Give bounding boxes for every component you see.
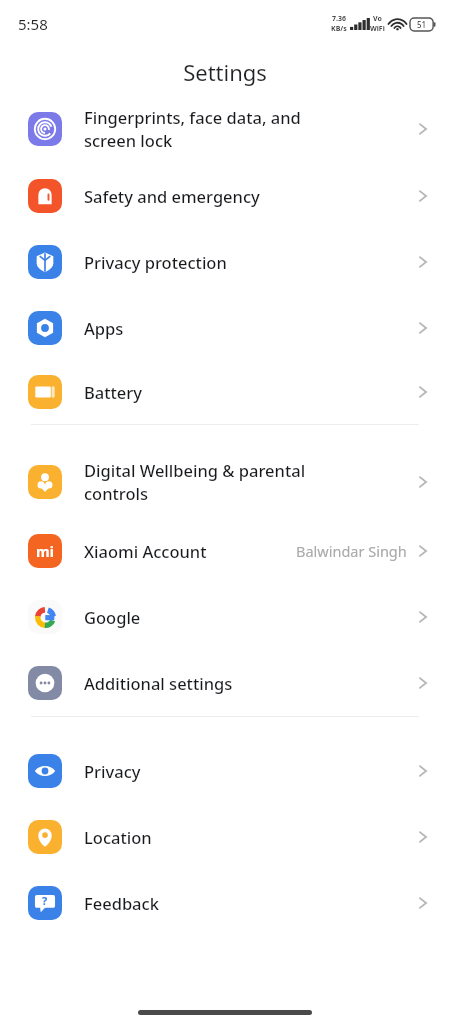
staticText: mi bbox=[36, 542, 54, 561]
button[interactable]: Additional settings bbox=[0, 650, 450, 716]
button[interactable]: Google bbox=[0, 584, 450, 650]
staticText: WiFi bbox=[370, 24, 385, 34]
staticText: Privacy protection bbox=[84, 251, 416, 273]
staticText: Settings bbox=[183, 57, 267, 87]
staticText: 5:58 bbox=[18, 14, 48, 34]
button[interactable]: Fingerprints, face data, and screen lock bbox=[0, 95, 450, 163]
button[interactable]: mi bbox=[0, 518, 450, 584]
button[interactable]: Digital Wellbeing & parental controls bbox=[0, 446, 450, 518]
staticText: Apps bbox=[84, 317, 416, 339]
staticText: Google bbox=[84, 606, 416, 628]
staticText: KB/s bbox=[331, 24, 347, 34]
button[interactable]: Location bbox=[0, 804, 450, 870]
button[interactable]: ? bbox=[0, 870, 450, 936]
button[interactable]: Privacy bbox=[0, 738, 450, 804]
button[interactable]: Privacy protection bbox=[0, 229, 450, 295]
staticText: 7.36 bbox=[332, 14, 346, 24]
staticText: Digital Wellbeing & parental controls bbox=[84, 459, 416, 505]
staticText: Balwindar Singh bbox=[296, 541, 407, 561]
staticText: Location bbox=[84, 826, 416, 848]
staticText: Privacy bbox=[84, 760, 416, 782]
staticText: Feedback bbox=[84, 892, 416, 914]
button[interactable]: Apps bbox=[0, 295, 450, 360]
staticText: Vo bbox=[373, 14, 382, 24]
button[interactable]: Safety and emergency bbox=[0, 163, 450, 229]
button[interactable]: Battery bbox=[0, 360, 450, 424]
staticText: Xiaomi Account bbox=[84, 540, 296, 562]
staticText: Battery bbox=[84, 381, 416, 403]
staticText: ? bbox=[42, 893, 48, 908]
staticText: 51 bbox=[417, 19, 427, 30]
staticText: Safety and emergency bbox=[84, 185, 416, 207]
staticText: Additional settings bbox=[84, 672, 416, 694]
staticText: Fingerprints, face data, and screen lock bbox=[84, 106, 416, 152]
